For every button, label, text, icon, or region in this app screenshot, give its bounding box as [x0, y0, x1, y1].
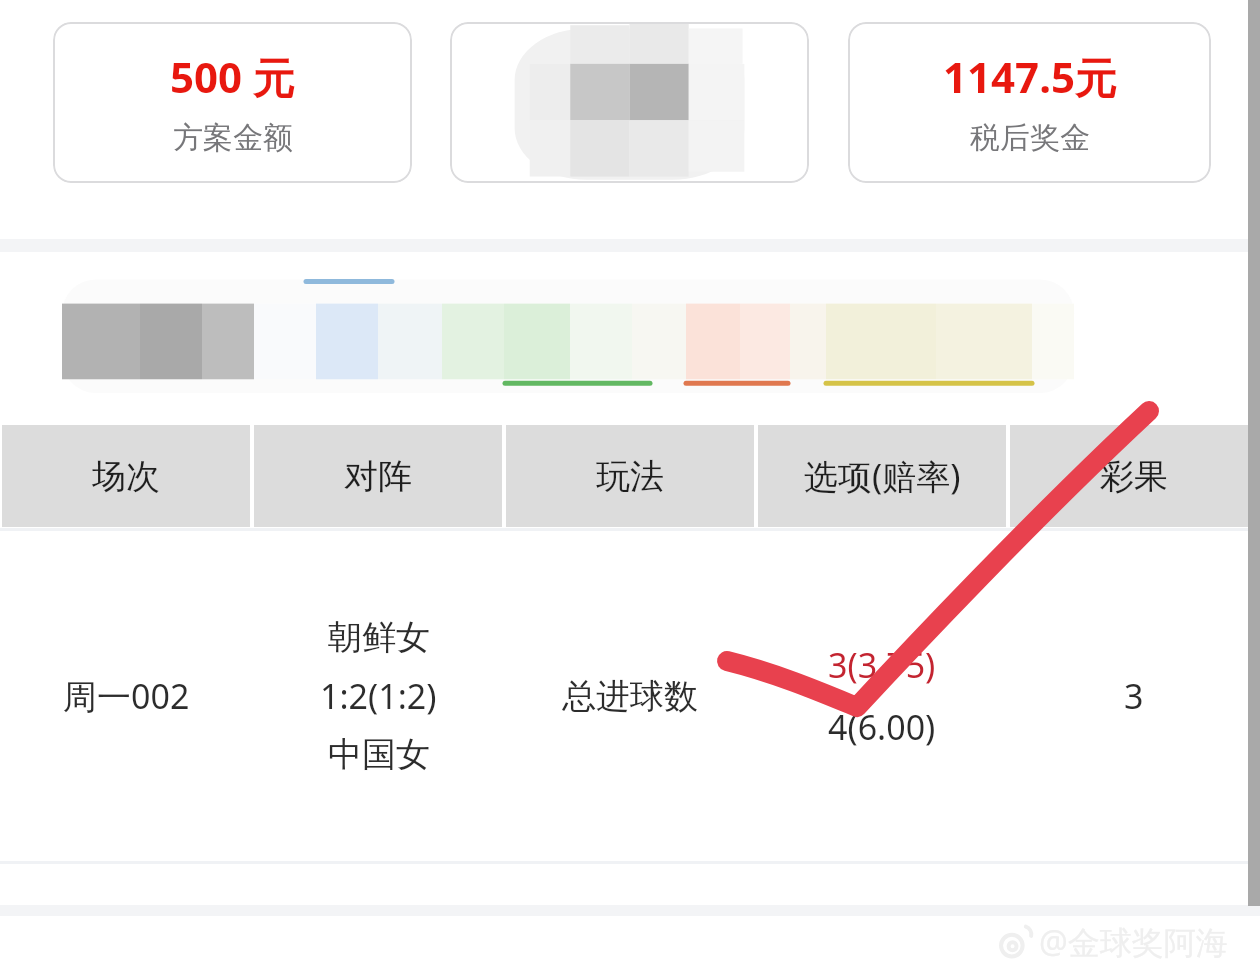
- button[interactable]: 对阵: [254, 425, 502, 527]
- button[interactable]: 选项(赔率): [758, 425, 1006, 527]
- staticText: 朝鲜女: [328, 616, 430, 659]
- staticText: 中国女: [328, 733, 430, 776]
- staticText: 总进球数: [562, 675, 698, 718]
- button[interactable]: 场次: [2, 425, 250, 527]
- staticText: 税后奖金: [970, 119, 1090, 157]
- button[interactable]: 3: [1010, 531, 1258, 861]
- staticText: 500 元: [170, 48, 295, 105]
- staticText: 玩法: [596, 455, 664, 498]
- button[interactable]: 500 元: [53, 22, 412, 183]
- other: Weibo: [996, 924, 1032, 960]
- staticText: 选项(赔率): [804, 453, 961, 499]
- button[interactable]: 周一002: [2, 531, 250, 861]
- button[interactable]: 彩果: [1010, 425, 1258, 527]
- button[interactable]: 玩法: [506, 425, 754, 527]
- button[interactable]: 朝鲜女: [254, 531, 502, 861]
- staticText: 周一002: [63, 673, 190, 719]
- staticText: 方案金额: [173, 119, 293, 157]
- button[interactable]: Hidden amount: [450, 22, 809, 183]
- staticText: 对阵: [344, 455, 412, 498]
- staticText: @金球奖阿海: [1039, 920, 1228, 964]
- button[interactable]: 3(3.75): [758, 531, 1006, 861]
- staticText: 场次: [92, 455, 160, 498]
- staticText: 3: [1124, 673, 1144, 719]
- staticText: 彩果: [1100, 455, 1168, 498]
- button[interactable]: 总进球数: [506, 531, 754, 861]
- staticText: 1:2(1:2): [320, 673, 437, 719]
- button[interactable]: 1147.5元: [848, 22, 1211, 183]
- staticText: 4(6.00): [828, 704, 936, 750]
- button[interactable]: Weibo: [996, 920, 1228, 964]
- staticText: 1147.5元: [943, 48, 1117, 105]
- staticText: 3(3.75): [828, 642, 936, 688]
